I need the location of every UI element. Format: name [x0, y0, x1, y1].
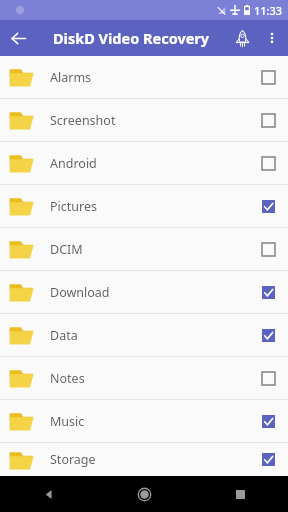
staticText: Screenshot — [50, 112, 116, 129]
button[interactable]: Download — [0, 271, 288, 313]
button[interactable]: More options — [259, 25, 285, 51]
button[interactable]: Notes not selected — [251, 361, 285, 395]
button[interactable]: Screenshot — [0, 99, 288, 141]
staticText: Android — [50, 155, 97, 172]
staticText: Notes — [50, 370, 85, 387]
button[interactable]: Storage selected — [251, 443, 285, 476]
button[interactable]: Data selected — [251, 318, 285, 352]
button[interactable]: Back — [0, 476, 96, 512]
staticText: DCIM — [50, 241, 83, 258]
button[interactable]: Recents — [192, 476, 288, 512]
button[interactable]: Alarms — [0, 56, 288, 98]
button[interactable]: Boost — [225, 21, 259, 55]
button[interactable]: Music — [0, 400, 288, 442]
button[interactable]: DCIM not selected — [251, 232, 285, 266]
button[interactable]: Music selected — [251, 404, 285, 438]
button[interactable]: Pictures — [0, 185, 288, 227]
staticText: DiskD Video Recovery — [53, 28, 210, 48]
staticText: Alarms — [50, 69, 92, 86]
staticText: Download — [50, 284, 110, 301]
button[interactable]: Android — [0, 142, 288, 184]
button[interactable]: Back — [0, 20, 36, 56]
staticText: Storage — [50, 451, 96, 468]
button[interactable]: Download selected — [251, 275, 285, 309]
button[interactable]: Home — [96, 476, 192, 512]
button[interactable]: Notes — [0, 357, 288, 399]
button[interactable]: DCIM — [0, 228, 288, 270]
button[interactable]: Storage — [0, 443, 288, 476]
staticText: Data — [50, 327, 78, 344]
staticText: 11:33 — [254, 3, 283, 18]
button[interactable]: Android not selected — [251, 146, 285, 180]
button[interactable]: Data — [0, 314, 288, 356]
staticText: Music — [50, 413, 85, 430]
button[interactable]: Alarms not selected — [251, 60, 285, 94]
button[interactable]: Screenshot not selected — [251, 103, 285, 137]
button[interactable]: Pictures selected — [251, 189, 285, 223]
staticText: Pictures — [50, 198, 97, 215]
